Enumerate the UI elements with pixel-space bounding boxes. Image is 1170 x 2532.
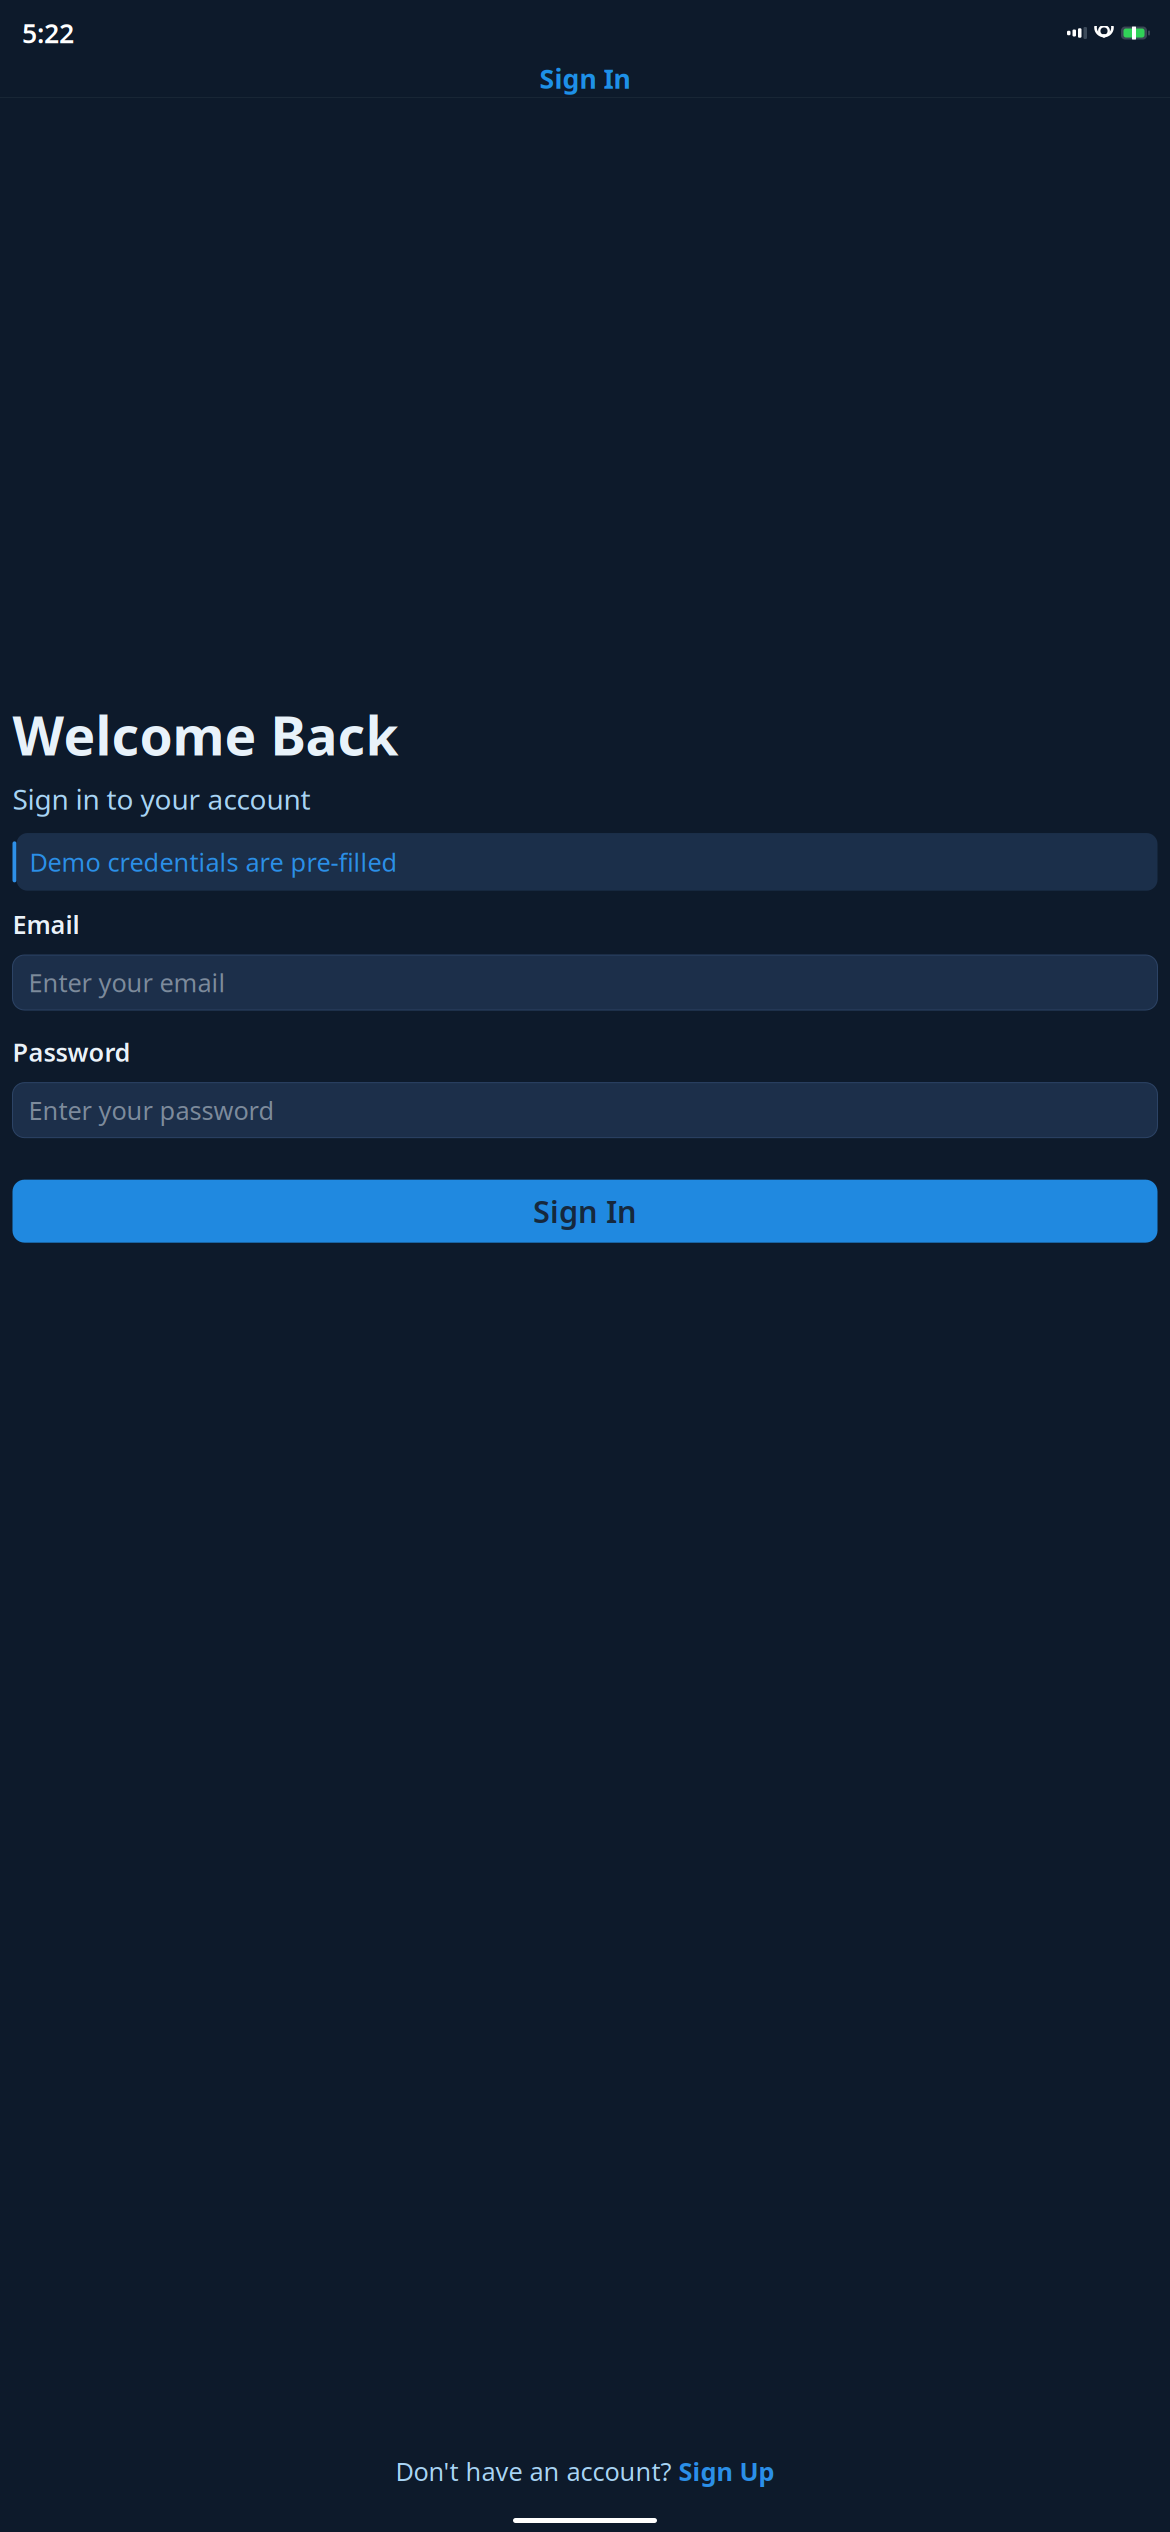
button[interactable]: Enter your email	[12, 955, 1157, 1010]
staticText: Email	[12, 907, 79, 941]
staticText: Sign In	[539, 61, 630, 96]
button[interactable]: Enter your password	[12, 1083, 1157, 1138]
button[interactable]: Don't have an account?	[0, 2446, 1170, 2496]
staticText: Sign In	[533, 1191, 637, 1231]
staticText: Password	[12, 1035, 130, 1069]
staticText: Sign Up	[678, 2454, 774, 2488]
staticText: Sign in to your account	[12, 780, 310, 817]
staticText: 5:22	[22, 15, 74, 51]
staticText: Welcome Back	[12, 699, 398, 770]
staticText: Enter your password	[28, 1093, 274, 1127]
staticText: Enter your email	[28, 966, 225, 999]
staticText: Don't have an account?	[395, 2454, 671, 2488]
button[interactable]: Sign In	[12, 1180, 1157, 1243]
staticText: Demo credentials are pre-filled	[29, 845, 397, 879]
